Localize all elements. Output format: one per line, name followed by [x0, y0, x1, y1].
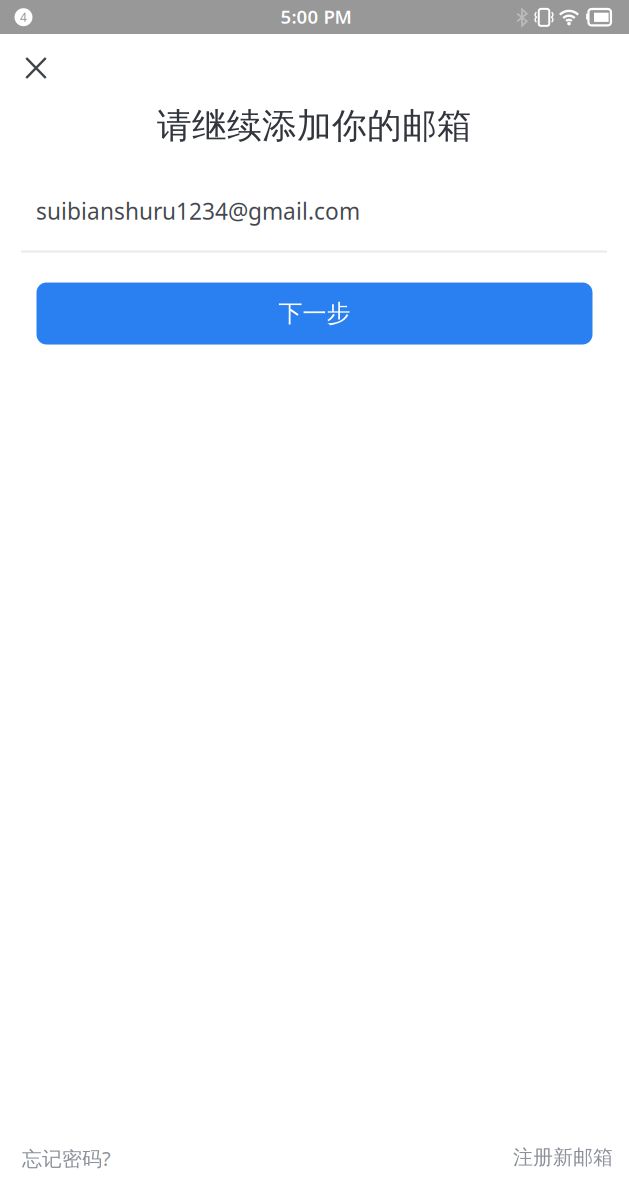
- button[interactable]: 下一步: [36, 282, 592, 344]
- staticText: 请继续添加你的邮箱: [157, 105, 472, 147]
- staticText: 5:00 PM: [280, 4, 351, 29]
- button[interactable]: Close: [14, 46, 58, 90]
- staticText: suibianshuru1234@gmail.com: [36, 196, 360, 226]
- staticText: 注册新邮箱: [513, 1145, 613, 1170]
- staticText: 下一步: [278, 299, 350, 328]
- staticText: 忘记密码?: [22, 1145, 111, 1172]
- staticText: 4: [20, 9, 27, 25]
- button[interactable]: 忘记密码?: [22, 1145, 111, 1172]
- button[interactable]: 注册新邮箱: [513, 1145, 613, 1170]
